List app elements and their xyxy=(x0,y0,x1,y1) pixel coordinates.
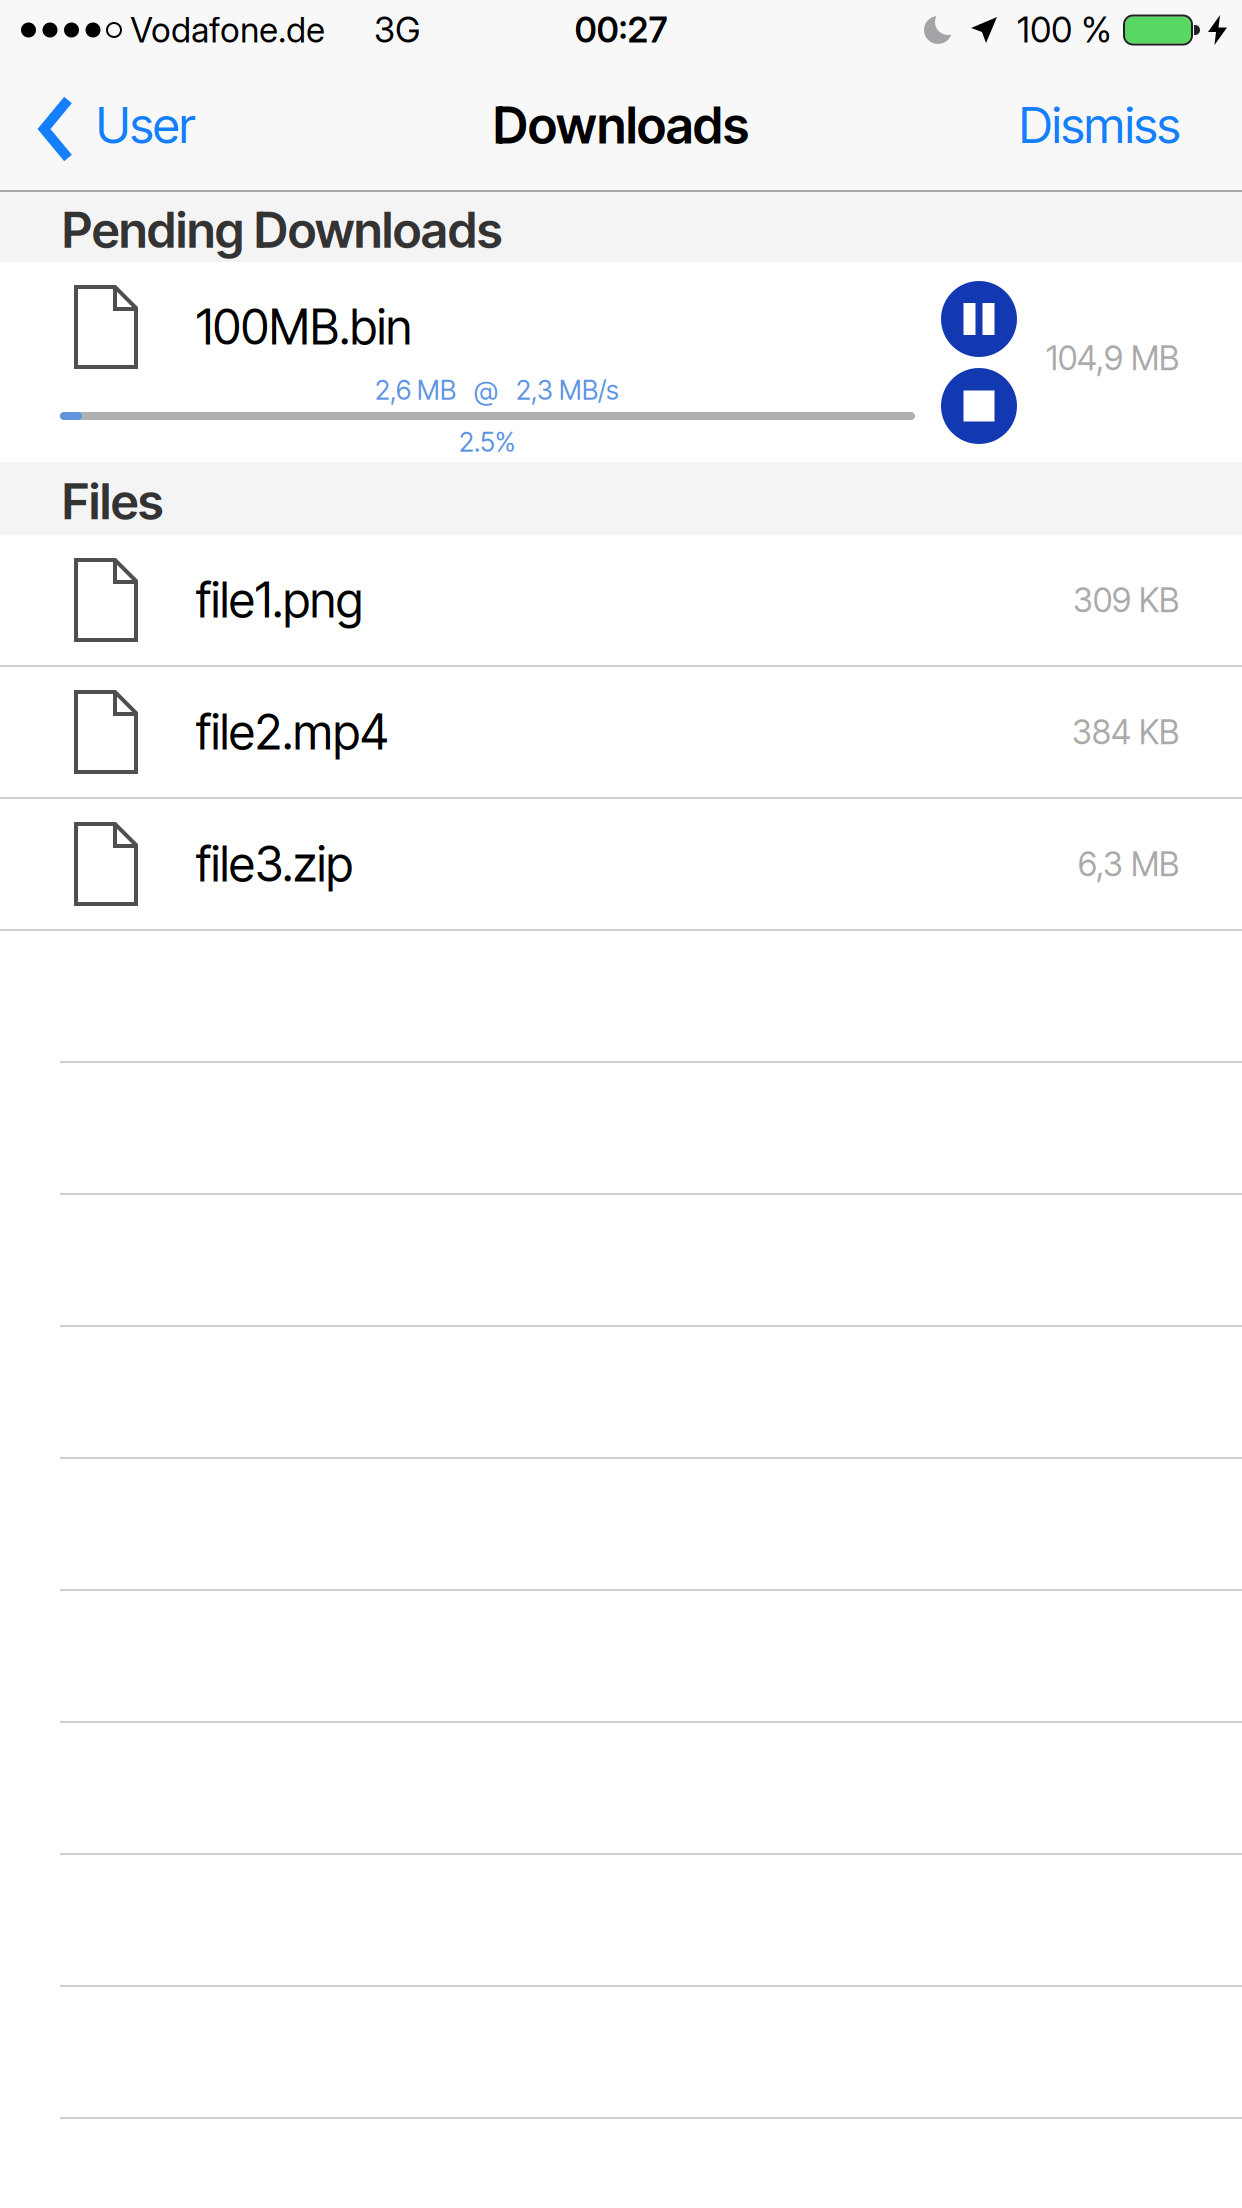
button[interactable]: file2.mp4 xyxy=(0,667,1242,797)
staticText: 00:27 xyxy=(574,9,667,51)
button[interactable]: Dismiss xyxy=(1019,95,1180,155)
staticText: 384 KB xyxy=(1072,712,1179,752)
staticText: Vodafone.de xyxy=(130,9,325,51)
staticText: file2.mp4 xyxy=(196,703,389,761)
button[interactable]: Stop download xyxy=(941,368,1017,444)
staticText: 104,9 MB xyxy=(1046,338,1179,378)
staticText: Downloads xyxy=(493,94,749,156)
button[interactable]: Back to User xyxy=(39,92,195,158)
staticText: Dismiss xyxy=(1019,95,1180,155)
button[interactable]: Pause download xyxy=(941,281,1017,357)
staticText: Pending Downloads xyxy=(62,200,502,260)
staticText: 100 % xyxy=(1017,9,1112,51)
staticText: 100MB.bin xyxy=(196,298,412,356)
button[interactable]: file3.zip xyxy=(0,799,1242,929)
button[interactable]: file1.png xyxy=(0,535,1242,665)
staticText: Files xyxy=(62,471,163,531)
staticText: 3G xyxy=(374,9,421,51)
staticText: User xyxy=(96,95,195,155)
staticText: 2,6 MB @ 2,3 MB/s xyxy=(375,374,619,406)
staticText: file3.zip xyxy=(196,835,353,893)
staticText: 309 KB xyxy=(1073,580,1179,620)
staticText: 6,3 MB xyxy=(1078,844,1179,884)
staticText: 2.5% xyxy=(459,426,515,458)
staticText: file1.png xyxy=(196,571,363,629)
